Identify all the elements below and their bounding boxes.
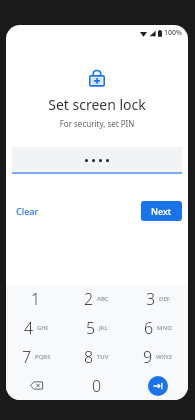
staticText: For security, set PIN [6, 118, 188, 129]
button[interactable]: 0 [66, 371, 127, 400]
button[interactable] [12, 147, 182, 174]
button[interactable]: 4 [6, 313, 66, 342]
button[interactable]: 3 [127, 285, 188, 313]
staticText: PQRS [35, 353, 51, 361]
staticText: 5 [86, 317, 96, 339]
staticText: DEF [159, 295, 170, 303]
button[interactable]: 1 [6, 285, 66, 313]
staticText: 7 [22, 346, 32, 368]
staticText: 9 [143, 346, 153, 368]
button[interactable]: 6 [127, 313, 188, 342]
staticText: MNO [157, 324, 172, 332]
button[interactable]: 9 [127, 342, 188, 371]
staticText: 6 [144, 317, 154, 339]
staticText: 100% [164, 28, 182, 38]
button[interactable]: 2 [66, 285, 127, 313]
staticText: 4 [24, 317, 34, 339]
button[interactable]: 7 [6, 342, 66, 371]
button[interactable]: Next [141, 201, 182, 221]
button[interactable]: Backspace [6, 371, 66, 400]
staticText: 0 [92, 375, 102, 397]
staticText: JKL [99, 324, 108, 332]
staticText: Set screen lock [6, 95, 188, 114]
button[interactable]: Enter [127, 371, 188, 400]
button[interactable]: 8 [66, 342, 127, 371]
staticText: GHI [37, 324, 48, 332]
staticText: ABC [97, 295, 109, 303]
staticText: 2 [84, 288, 94, 310]
button[interactable]: Clear [12, 201, 43, 221]
staticText: TUV [97, 353, 109, 361]
staticText: Next [151, 205, 172, 217]
staticText: 8 [84, 346, 94, 368]
staticText: Clear [16, 205, 39, 217]
staticText: 1 [31, 288, 41, 310]
button[interactable]: 5 [66, 313, 127, 342]
staticText: 3 [146, 288, 156, 310]
staticText: WXYZ [156, 353, 173, 361]
